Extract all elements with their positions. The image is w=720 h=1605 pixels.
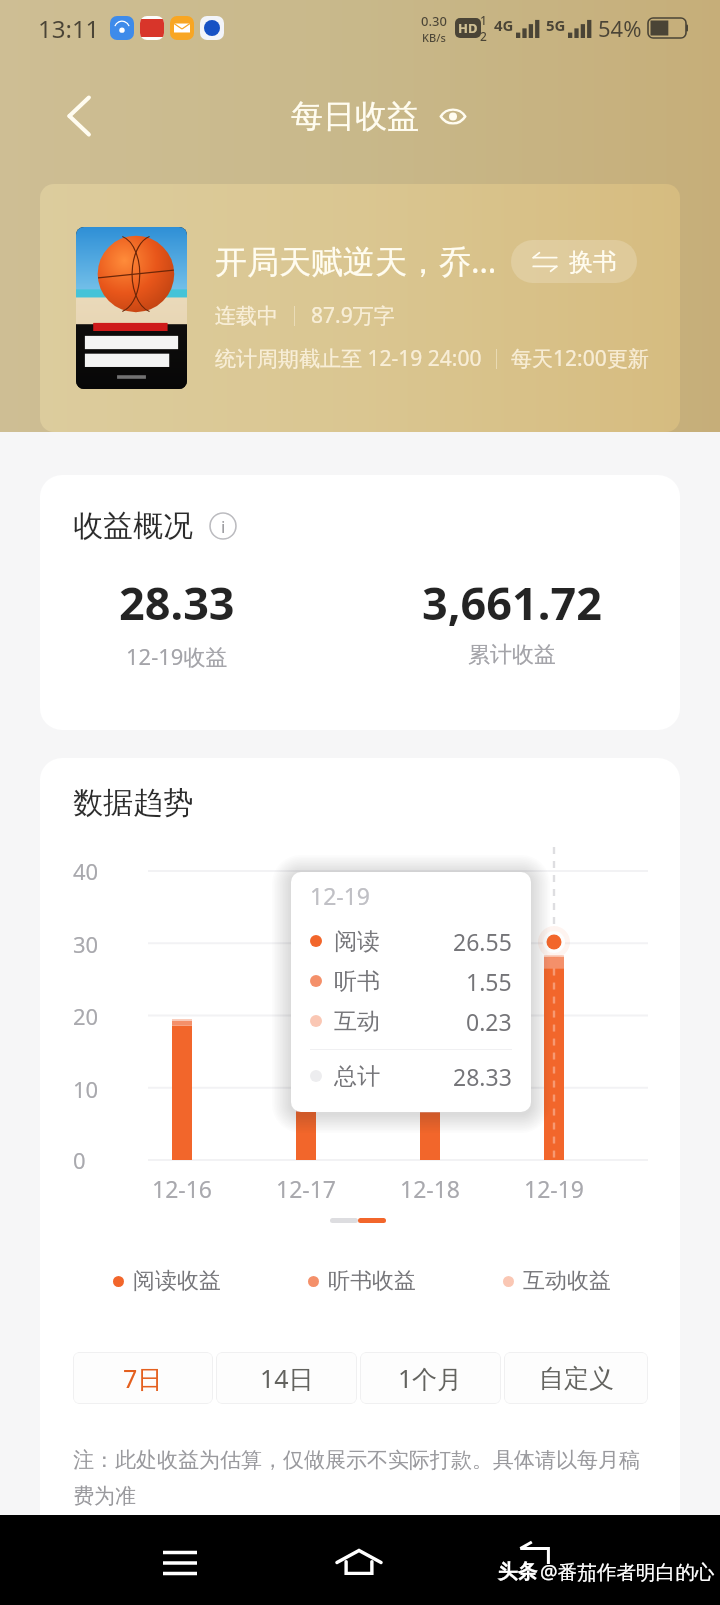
staticText: 互动 bbox=[334, 1007, 380, 1036]
staticText: 0.30 bbox=[421, 12, 447, 30]
staticText: 20 bbox=[73, 1001, 99, 1031]
staticText: 5G bbox=[546, 15, 566, 35]
staticText: 累计收益 bbox=[468, 641, 556, 669]
staticText: 注：此处收益为估算，仅做展示不实际打款。具体请以每月稿费为准 bbox=[73, 1447, 652, 1509]
staticText: 30 bbox=[73, 929, 99, 959]
button[interactable]: Back bbox=[488, 1527, 580, 1579]
staticText: 54% bbox=[598, 13, 642, 43]
staticText: 12-18 bbox=[400, 1173, 461, 1204]
staticText: 数据趋势 bbox=[73, 784, 193, 822]
staticText: 28.33 bbox=[119, 572, 235, 633]
staticText: 10 bbox=[73, 1074, 99, 1104]
staticText: 1个月 bbox=[398, 1361, 463, 1395]
staticText: 4G bbox=[494, 15, 514, 35]
staticText: 每天12:00更新 bbox=[511, 344, 649, 373]
staticText: 统计周期截止至 12-19 24:00 bbox=[215, 344, 482, 373]
staticText: 1 bbox=[480, 12, 487, 28]
staticText: 总计 bbox=[334, 1062, 380, 1091]
button[interactable]: Show or hide earnings bbox=[433, 96, 473, 136]
staticText: @番茄作者明白的心 bbox=[540, 1558, 715, 1585]
staticText: 7日 bbox=[123, 1361, 163, 1395]
button[interactable]: 7日 bbox=[73, 1352, 213, 1404]
staticText: 互动收益 bbox=[523, 1267, 611, 1295]
staticText: HD bbox=[458, 19, 478, 37]
staticText: 头条 bbox=[498, 1559, 538, 1584]
staticText: 12-17 bbox=[276, 1173, 337, 1204]
staticText: 28.33 bbox=[453, 1061, 512, 1092]
staticText: 听书收益 bbox=[328, 1267, 416, 1295]
button[interactable]: Info bbox=[207, 510, 239, 542]
staticText: 阅读 bbox=[334, 927, 380, 956]
staticText: 14日 bbox=[260, 1361, 314, 1395]
staticText: 12-19 bbox=[524, 1173, 585, 1204]
staticText: KB/s bbox=[422, 30, 446, 45]
staticText: 自定义 bbox=[539, 1363, 614, 1394]
button[interactable]: 14日 bbox=[216, 1352, 357, 1404]
staticText: 12-19 bbox=[310, 880, 371, 911]
staticText: 0 bbox=[73, 1145, 86, 1175]
staticText: 开局天赋逆天，乔… bbox=[215, 239, 497, 283]
staticText: 87.9万字 bbox=[311, 301, 395, 330]
button[interactable]: Home bbox=[313, 1537, 405, 1589]
staticText: 3,661.72 bbox=[422, 572, 602, 633]
staticText: 2 bbox=[480, 28, 487, 44]
staticText: 换书 bbox=[569, 247, 617, 277]
staticText: 连载中 bbox=[215, 303, 278, 329]
button[interactable]: 开局天赋逆天，乔… bbox=[40, 184, 680, 432]
button[interactable]: Recent apps bbox=[134, 1537, 226, 1589]
button[interactable]: 自定义 bbox=[504, 1352, 648, 1404]
button[interactable]: Back bbox=[34, 71, 124, 161]
staticText: 0.23 bbox=[466, 1006, 512, 1037]
staticText: 1.55 bbox=[466, 966, 512, 997]
staticText: 13:11 bbox=[38, 12, 100, 45]
staticText: 收益概况 bbox=[73, 507, 193, 545]
staticText: 26.55 bbox=[453, 926, 512, 957]
staticText: 听书 bbox=[334, 967, 380, 996]
staticText: 40 bbox=[73, 856, 99, 886]
staticText: 12-19收益 bbox=[126, 641, 228, 671]
staticText: 阅读收益 bbox=[133, 1267, 221, 1295]
button[interactable]: 换书 bbox=[511, 240, 637, 283]
staticText: i bbox=[221, 515, 226, 538]
button[interactable]: 1个月 bbox=[360, 1352, 501, 1404]
staticText: 12-16 bbox=[152, 1173, 213, 1204]
staticText: 每日收益 bbox=[291, 96, 419, 136]
